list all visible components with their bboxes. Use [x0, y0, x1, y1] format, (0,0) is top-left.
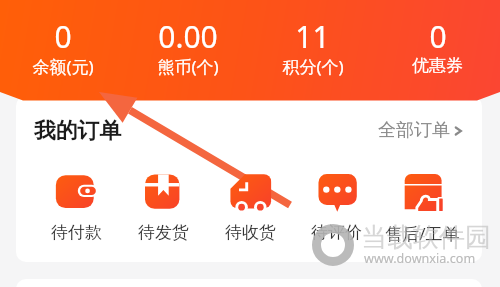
- staticText: 0.00: [158, 16, 218, 57]
- staticText: 我的订单: [34, 117, 122, 144]
- staticText: 全部订单: [378, 119, 450, 142]
- button[interactable]: 0: [375, 0, 500, 78]
- staticText: 待评价: [311, 222, 362, 243]
- button[interactable]: 待评价: [293, 174, 379, 243]
- staticText: 0: [54, 16, 72, 57]
- staticText: 待付款: [51, 222, 102, 243]
- button[interactable]: 待付款: [33, 174, 120, 243]
- staticText: 余额(元): [32, 55, 94, 78]
- button[interactable]: 0.00: [125, 0, 250, 80]
- staticText: 11: [295, 16, 330, 57]
- button[interactable]: 11: [250, 0, 375, 80]
- button[interactable]: 售后/工单: [379, 174, 465, 245]
- button[interactable]: 待收货: [207, 174, 293, 243]
- button[interactable]: 全部订单: [378, 119, 466, 142]
- staticText: 待发货: [138, 222, 189, 243]
- staticText: 待收货: [225, 222, 276, 243]
- staticText: 优惠券: [412, 55, 463, 76]
- staticText: 积分(个): [282, 55, 344, 78]
- staticText: 当载软件园: [361, 221, 491, 254]
- staticText: www.downxia.com: [364, 250, 476, 267]
- staticText: 熊币(个): [157, 55, 219, 78]
- staticText: 售后/工单: [385, 222, 460, 245]
- staticText: 0: [429, 16, 447, 57]
- button[interactable]: 待发货: [120, 174, 207, 243]
- button[interactable]: 0: [0, 0, 125, 80]
